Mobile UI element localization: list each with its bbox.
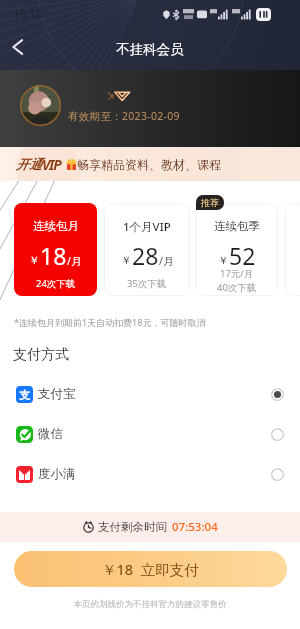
button[interactable]: 支	[0, 374, 300, 414]
staticText: 支付方式	[13, 346, 69, 364]
staticText: ￥	[29, 254, 40, 267]
staticText: /月	[159, 254, 174, 268]
staticText: 连续包月	[33, 219, 79, 233]
staticText: 畅享精品资料、教材、课程	[77, 157, 221, 172]
staticText: 52	[229, 240, 256, 271]
staticText: 微信	[38, 426, 63, 442]
staticText: 17元/月	[220, 267, 254, 280]
staticText: 推荐	[201, 197, 219, 208]
button[interactable]: 连续包季	[196, 203, 278, 296]
button[interactable]: 1个月VIP	[104, 203, 190, 296]
staticText: 1个月VIP	[123, 219, 171, 235]
staticText: 15:18	[13, 6, 43, 22]
staticText: 18	[40, 240, 67, 271]
staticText: 开通	[16, 156, 42, 172]
staticText: ￥18 立即支付	[102, 559, 199, 579]
staticText: ￥	[121, 254, 132, 267]
button[interactable]: 度小满	[0, 454, 300, 494]
staticText: 度小满	[38, 466, 76, 482]
staticText: 35次下载	[127, 277, 167, 290]
staticText: 支	[19, 388, 30, 402]
staticText: 不挂科会员	[116, 41, 184, 58]
staticText: 连续包季	[214, 219, 260, 233]
staticText: 07:53:04	[172, 519, 218, 535]
button[interactable]: 连续包月	[14, 203, 97, 296]
staticText: 支付宝	[38, 386, 76, 402]
staticText: 24次下载	[36, 277, 76, 290]
button[interactable]: ￥18 立即支付	[14, 551, 287, 587]
staticText: 本页的划线价为不挂科官方的建议零售价	[0, 599, 300, 610]
staticText: ￥	[218, 254, 229, 267]
staticText: *连续包月到期前1天自动扣费18元，可随时取消	[14, 316, 206, 328]
button[interactable]: 微信	[0, 414, 300, 454]
button[interactable]	[285, 203, 300, 296]
staticText: 支付剩余时间	[98, 520, 167, 534]
staticText: 28	[132, 240, 159, 271]
button[interactable]: Back	[0, 30, 34, 64]
staticText: VIP	[42, 155, 61, 174]
staticText: 有效期至：2023-02-09	[68, 109, 180, 123]
staticText: /月	[67, 254, 82, 268]
staticText: 40次下载	[217, 281, 257, 294]
